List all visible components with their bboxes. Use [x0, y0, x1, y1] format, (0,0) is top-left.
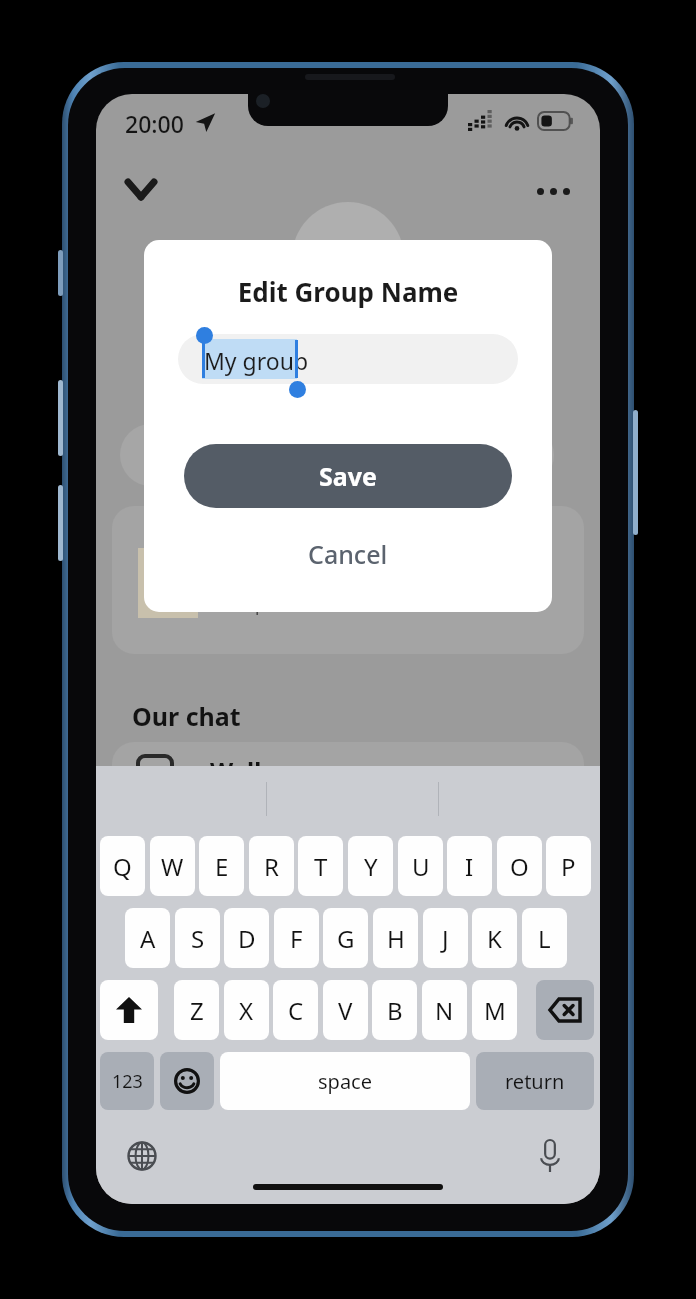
staticText: 123: [112, 1069, 143, 1094]
button[interactable]: 123: [100, 1052, 154, 1110]
button[interactable]: space: [220, 1052, 470, 1110]
button[interactable]: return: [476, 1052, 594, 1110]
staticText: J: [442, 922, 449, 955]
button[interactable]: T: [298, 836, 343, 896]
button[interactable]: Z: [174, 980, 219, 1040]
staticText: My group: [204, 345, 309, 376]
button[interactable]: I: [447, 836, 492, 896]
staticText: I: [465, 850, 474, 883]
button[interactable]: G: [323, 908, 368, 968]
staticText: F: [290, 922, 303, 955]
button[interactable]: Save: [184, 444, 512, 508]
button[interactable]: Action: [344, 424, 442, 486]
staticText: W: [161, 850, 184, 883]
button[interactable]: Emoji: [160, 1052, 214, 1110]
button[interactable]: R: [249, 836, 294, 896]
staticText: space: [318, 1068, 372, 1095]
button[interactable]: K: [472, 908, 517, 968]
button[interactable]: Collapse: [118, 166, 164, 212]
button[interactable]: W: [150, 836, 195, 896]
button[interactable]: D: [224, 908, 269, 968]
button[interactable]: Shift: [100, 980, 158, 1040]
staticText: Edit Group Name: [144, 274, 552, 309]
button[interactable]: Wallpaper: [112, 742, 584, 832]
button[interactable]: Action: [232, 424, 330, 486]
staticText: return: [505, 1068, 565, 1095]
staticText: L: [538, 922, 551, 955]
staticText: A: [140, 922, 156, 955]
button[interactable]: B: [372, 980, 417, 1040]
staticText: K: [487, 922, 502, 955]
button[interactable]: V: [323, 980, 368, 1040]
button[interactable]: M: [472, 980, 517, 1040]
button[interactable]: Q: [100, 836, 145, 896]
button[interactable]: Action: [456, 424, 554, 486]
staticText: Z: [190, 994, 204, 1027]
staticText: Y: [364, 850, 378, 883]
staticText: Cancel: [308, 537, 388, 571]
button[interactable]: N: [422, 980, 467, 1040]
staticText: G: [337, 922, 355, 955]
button[interactable]: L: [522, 908, 567, 968]
button[interactable]: H: [373, 908, 418, 968]
staticText: Q: [113, 850, 132, 883]
button[interactable]: E: [199, 836, 244, 896]
button[interactable]: Cancel: [144, 528, 552, 580]
button[interactable]: Backspace: [536, 980, 594, 1040]
button[interactable]: send a notification - just like with Sna…: [112, 506, 584, 654]
button[interactable]: F: [274, 908, 319, 968]
button[interactable]: Y: [348, 836, 393, 896]
staticText: O: [510, 850, 529, 883]
staticText: Our chat: [132, 699, 241, 733]
button[interactable]: U: [398, 836, 443, 896]
staticText: Wallpaper: [210, 754, 332, 787]
button[interactable]: X: [224, 980, 269, 1040]
staticText: T: [314, 850, 328, 883]
staticText: X: [239, 994, 254, 1027]
staticText: N: [435, 994, 454, 1027]
staticText: V: [338, 994, 353, 1027]
button[interactable]: O: [497, 836, 542, 896]
staticText: 20:00: [125, 108, 184, 139]
staticText: C: [288, 994, 304, 1027]
button[interactable]: S: [175, 908, 220, 968]
button[interactable]: More options: [528, 166, 578, 216]
button[interactable]: Action: [120, 424, 218, 486]
staticText: H: [387, 922, 405, 955]
staticText: Save: [319, 459, 377, 493]
staticText: E: [215, 850, 229, 883]
staticText: M: [484, 994, 506, 1027]
staticText: R: [264, 850, 279, 883]
button[interactable]: Change keyboard: [120, 1134, 164, 1178]
button[interactable]: Dictate: [528, 1134, 572, 1178]
button[interactable]: A: [125, 908, 170, 968]
staticText: send a notification - just like with Sna…: [222, 564, 515, 616]
button[interactable]: J: [423, 908, 468, 968]
button[interactable]: C: [273, 980, 318, 1040]
staticText: P: [561, 850, 576, 883]
staticText: S: [191, 922, 205, 955]
staticText: U: [412, 850, 430, 883]
staticText: B: [387, 994, 403, 1027]
staticText: D: [238, 922, 256, 955]
button[interactable]: P: [546, 836, 591, 896]
button[interactable]: My group: [178, 334, 518, 384]
